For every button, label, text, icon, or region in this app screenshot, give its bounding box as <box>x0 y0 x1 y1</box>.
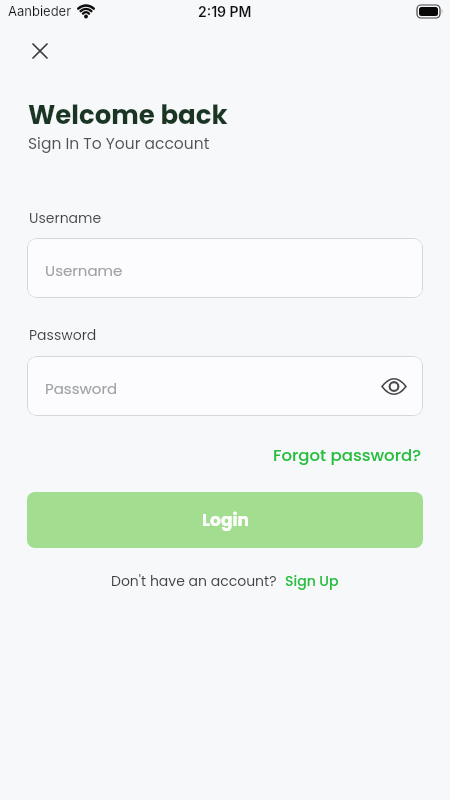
staticText: Sign Up <box>285 571 339 591</box>
staticText: Forgot password? <box>273 444 422 467</box>
button[interactable]: Username <box>27 238 423 298</box>
staticText: Username <box>45 260 123 281</box>
button[interactable]: Sign Up <box>285 571 339 591</box>
button[interactable]: Forgot password? <box>273 444 422 467</box>
staticText: Password <box>45 378 118 399</box>
staticText: Don't have an account? <box>111 571 277 591</box>
button[interactable] <box>379 371 409 401</box>
button[interactable]: Login <box>27 492 423 548</box>
staticText: 2:19 PM <box>198 3 252 20</box>
staticText: Aanbieder <box>8 3 72 19</box>
button[interactable]: Password <box>27 356 423 416</box>
staticText: Password <box>29 325 97 345</box>
button[interactable] <box>32 43 48 59</box>
staticText: Welcome back <box>28 97 228 133</box>
staticText: Login <box>202 508 249 532</box>
staticText: Sign In To Your account <box>28 133 210 155</box>
staticText: Username <box>29 208 102 228</box>
